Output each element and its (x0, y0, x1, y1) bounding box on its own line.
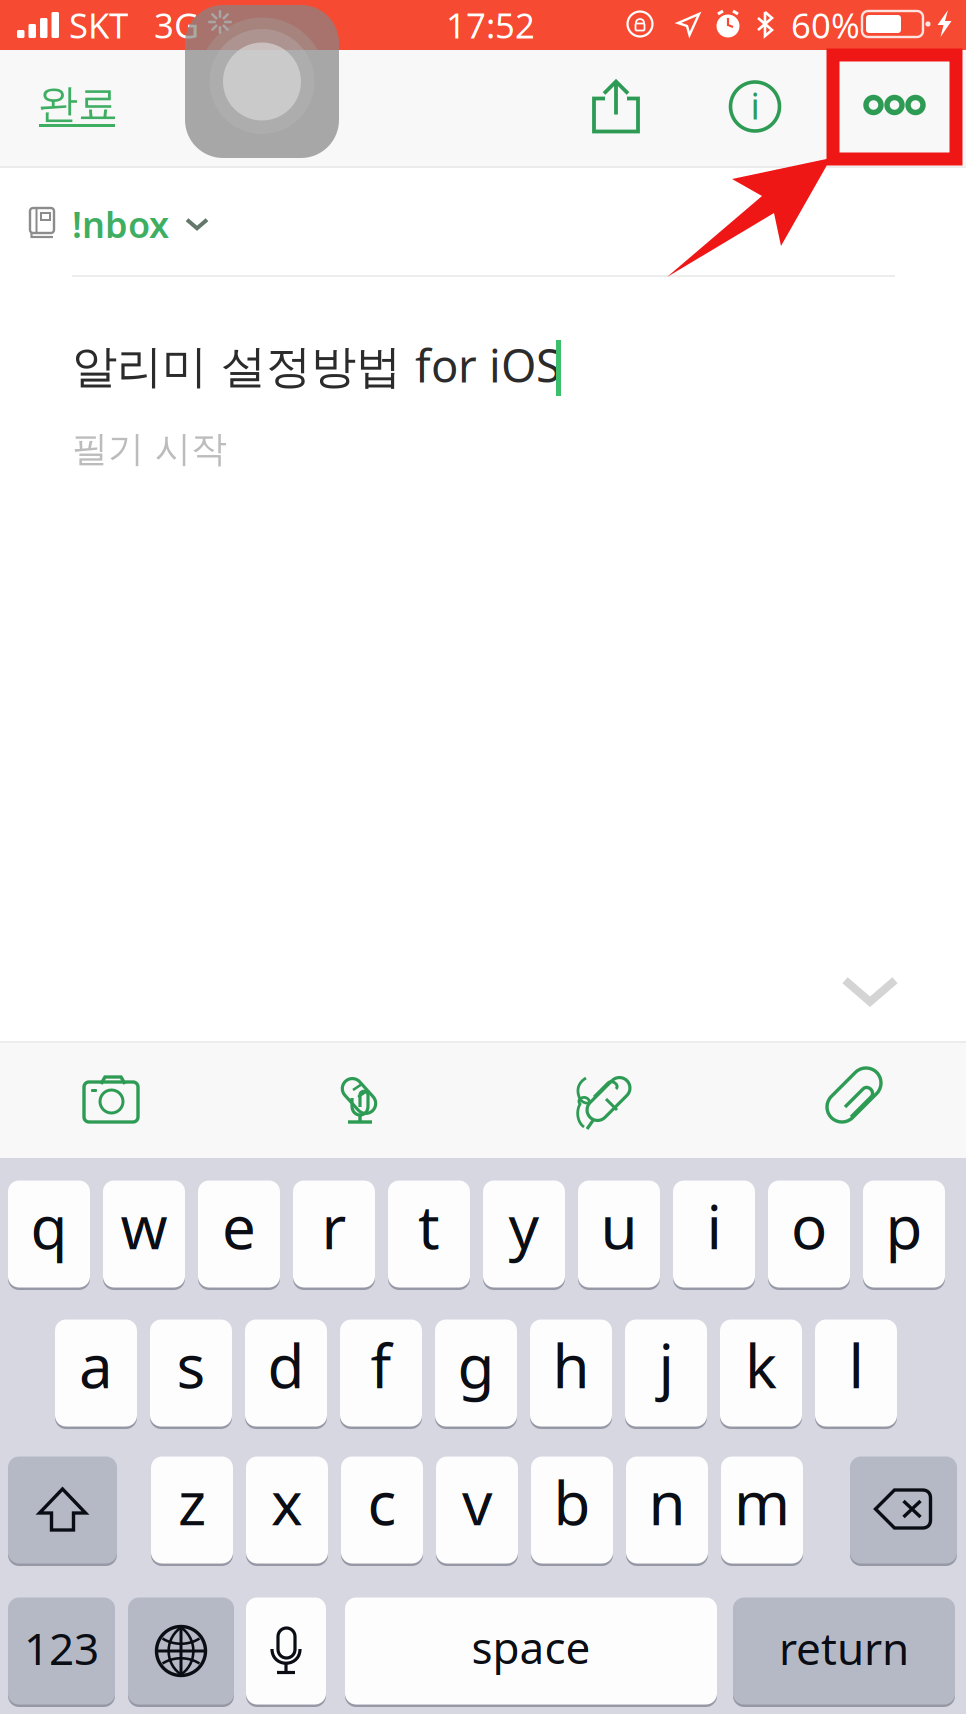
button[interactable]: q (8, 1179, 90, 1289)
button[interactable]: return (733, 1596, 955, 1706)
staticText: i (750, 82, 759, 129)
staticText: c (367, 1462, 396, 1542)
staticText: 완료 (38, 79, 118, 128)
staticText: w (120, 1186, 167, 1266)
button[interactable]: Info (695, 50, 815, 163)
staticText: n (648, 1462, 685, 1542)
button[interactable]: g (435, 1318, 517, 1428)
button[interactable]: Camera (0, 1043, 242, 1158)
button[interactable]: Dictation (246, 1596, 326, 1706)
staticText: e (222, 1186, 256, 1266)
staticText: 필기 시작 (72, 427, 227, 471)
button[interactable]: z (151, 1455, 233, 1565)
button[interactable]: Next keyboard (128, 1596, 234, 1706)
button[interactable]: o (768, 1179, 850, 1289)
staticText: t (418, 1186, 440, 1266)
button[interactable]: 123 (8, 1596, 115, 1706)
staticText: k (745, 1325, 777, 1405)
button[interactable]: w (103, 1179, 185, 1289)
button[interactable]: v (436, 1455, 518, 1565)
button[interactable]: Share (556, 49, 676, 164)
staticText: q (30, 1186, 67, 1266)
staticText: 60% (791, 2, 860, 48)
staticText: d (267, 1325, 304, 1405)
staticText: 123 (24, 1619, 99, 1677)
staticText: j (658, 1325, 673, 1405)
button[interactable]: p (863, 1179, 945, 1289)
staticText: space (471, 1618, 590, 1676)
staticText: !nbox (72, 200, 169, 248)
staticText: p (885, 1186, 922, 1266)
button[interactable]: !nbox (14, 188, 274, 256)
button[interactable]: k (720, 1318, 802, 1428)
staticText: a (79, 1325, 113, 1405)
button[interactable]: c (341, 1455, 423, 1565)
button[interactable]: Delete (850, 1455, 957, 1565)
button[interactable]: u (578, 1179, 660, 1289)
button[interactable]: x (246, 1455, 328, 1565)
staticText: u (600, 1186, 637, 1266)
staticText: s (176, 1325, 205, 1405)
button[interactable]: r (293, 1179, 375, 1289)
staticText: z (178, 1462, 206, 1542)
staticText: m (734, 1462, 790, 1542)
staticText: i (706, 1186, 721, 1266)
button[interactable]: Audio note (242, 1043, 484, 1158)
button[interactable]: t (388, 1179, 470, 1289)
button[interactable]: i (673, 1179, 755, 1289)
button[interactable]: Shift (8, 1455, 117, 1565)
staticText: f (370, 1325, 391, 1405)
staticText: b (553, 1462, 590, 1542)
button[interactable]: More options (836, 55, 953, 155)
button[interactable]: a (55, 1318, 137, 1428)
button[interactable]: h (530, 1318, 612, 1428)
staticText: v (462, 1462, 492, 1542)
staticText: r (321, 1186, 346, 1266)
staticText: x (271, 1462, 303, 1542)
button[interactable]: Hide keyboard (812, 945, 928, 1041)
staticText: h (552, 1325, 589, 1405)
button[interactable]: n (626, 1455, 708, 1565)
button[interactable]: s (150, 1318, 232, 1428)
button[interactable]: l (815, 1318, 897, 1428)
staticText: SKT (69, 2, 128, 48)
staticText: 알리미 설정방법 for iOS (72, 335, 561, 395)
button[interactable]: y (483, 1179, 565, 1289)
staticText: return (779, 1619, 909, 1677)
button[interactable]: space (345, 1596, 717, 1706)
button[interactable]: f (340, 1318, 422, 1428)
button[interactable]: m (721, 1455, 803, 1565)
button[interactable]: e (198, 1179, 280, 1289)
button[interactable]: j (625, 1318, 707, 1428)
staticText: 17:52 (446, 2, 535, 48)
staticText: y (508, 1186, 539, 1266)
button[interactable]: 완료 (14, 62, 174, 162)
staticText: 3G (154, 2, 199, 48)
staticText: l (848, 1325, 863, 1405)
button[interactable]: d (245, 1318, 327, 1428)
button[interactable]: Handwriting (484, 1043, 726, 1158)
button[interactable]: b (531, 1455, 613, 1565)
button[interactable]: Attachment (726, 1043, 966, 1158)
staticText: g (457, 1325, 494, 1405)
staticText: o (791, 1186, 827, 1266)
